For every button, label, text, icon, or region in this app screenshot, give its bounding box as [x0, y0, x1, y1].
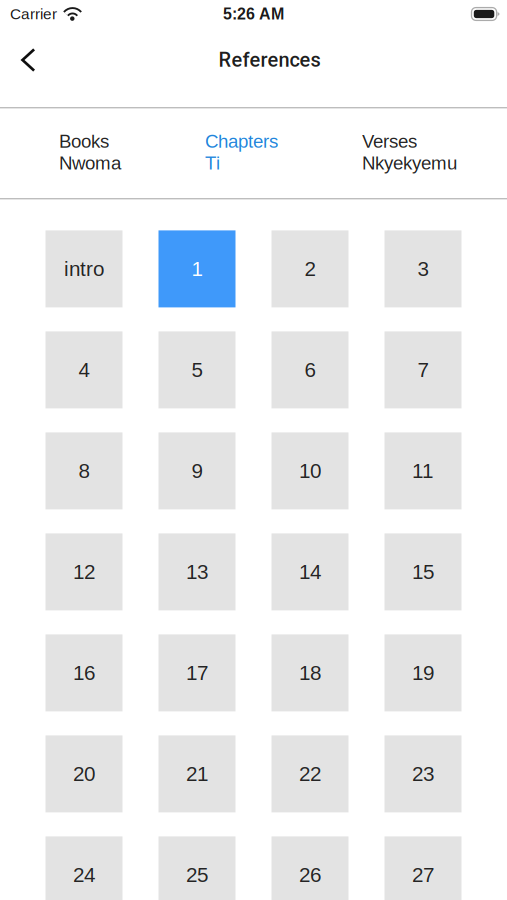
button[interactable]: 4 [45, 331, 122, 408]
staticText: Carrier [10, 5, 57, 22]
button[interactable]: 16 [45, 634, 122, 711]
staticText: 27 [412, 863, 434, 886]
staticText: 22 [299, 762, 321, 785]
staticText: 5 [191, 358, 202, 381]
staticText: 24 [73, 863, 95, 886]
staticText: 12 [73, 560, 95, 583]
button[interactable]: Back [6, 38, 50, 82]
staticText: 7 [417, 358, 428, 381]
button[interactable]: 10 [271, 432, 348, 509]
staticText: 4 [78, 358, 89, 381]
button[interactable]: 26 [271, 836, 348, 900]
staticText: 14 [299, 560, 321, 583]
button[interactable]: 24 [45, 836, 122, 900]
staticText: 18 [299, 661, 321, 684]
staticText: 2 [304, 257, 315, 280]
button[interactable]: 11 [384, 432, 461, 509]
staticText: 21 [186, 762, 208, 785]
staticText: intro [64, 257, 104, 280]
button[interactable]: 6 [271, 331, 348, 408]
staticText: 25 [186, 863, 208, 886]
button[interactable]: Chapters [205, 131, 278, 173]
button[interactable]: intro [45, 230, 122, 307]
button[interactable]: 21 [158, 735, 235, 812]
staticText: Verses [362, 131, 417, 152]
button[interactable]: 12 [45, 533, 122, 610]
staticText: 23 [412, 762, 434, 785]
staticText: 20 [73, 762, 95, 785]
button[interactable]: 1 [158, 230, 235, 307]
staticText: Ti [205, 153, 220, 174]
staticText: 19 [412, 661, 434, 684]
button[interactable]: Verses [362, 131, 457, 173]
button[interactable]: 19 [384, 634, 461, 711]
staticText: Nkyekyemu [362, 153, 457, 174]
staticText: 9 [191, 459, 202, 482]
staticText: Nwoma [59, 153, 121, 174]
button[interactable]: 13 [158, 533, 235, 610]
staticText: 26 [299, 863, 321, 886]
button[interactable]: 7 [384, 331, 461, 408]
staticText: 6 [304, 358, 315, 381]
button[interactable]: 14 [271, 533, 348, 610]
button[interactable]: 9 [158, 432, 235, 509]
staticText: 13 [186, 560, 208, 583]
staticText: 15 [412, 560, 434, 583]
staticText: 17 [186, 661, 208, 684]
staticText: References [218, 48, 320, 72]
button[interactable]: 15 [384, 533, 461, 610]
staticText: 11 [412, 459, 434, 482]
staticText: Chapters [205, 131, 278, 152]
staticText: 3 [417, 257, 428, 280]
button[interactable]: 22 [271, 735, 348, 812]
staticText: 16 [73, 661, 95, 684]
button[interactable]: 23 [384, 735, 461, 812]
button[interactable]: 27 [384, 836, 461, 900]
button[interactable]: 2 [271, 230, 348, 307]
staticText: 8 [78, 459, 89, 482]
button[interactable]: Books [59, 131, 121, 173]
button[interactable]: 17 [158, 634, 235, 711]
button[interactable]: 5 [158, 331, 235, 408]
staticText: Books [59, 131, 109, 152]
button[interactable]: 25 [158, 836, 235, 900]
staticText: 5:26 AM [223, 5, 284, 23]
staticText: 1 [191, 257, 202, 280]
button[interactable]: 20 [45, 735, 122, 812]
button[interactable]: 3 [384, 230, 461, 307]
staticText: 10 [299, 459, 321, 482]
button[interactable]: 8 [45, 432, 122, 509]
button[interactable]: 18 [271, 634, 348, 711]
